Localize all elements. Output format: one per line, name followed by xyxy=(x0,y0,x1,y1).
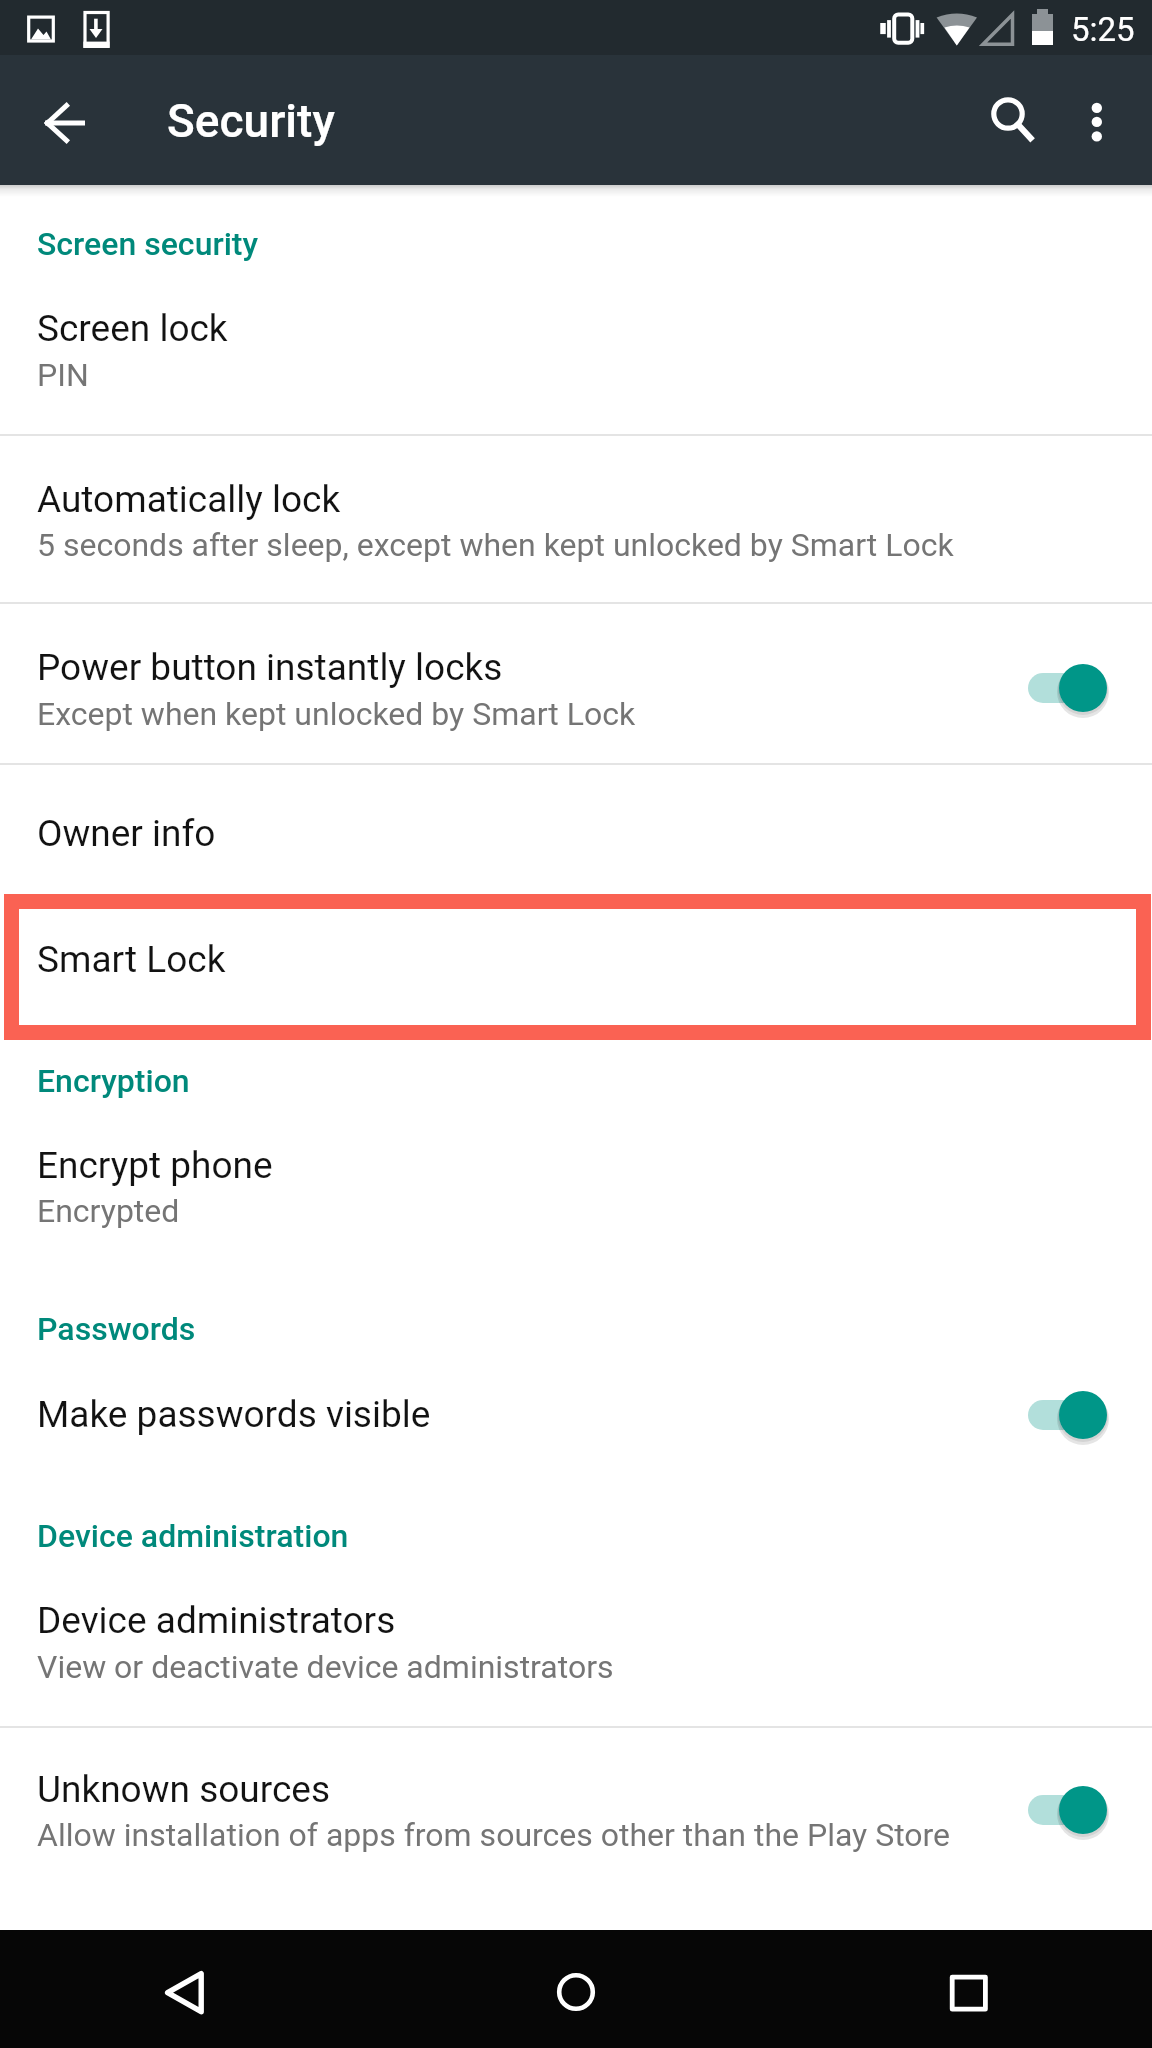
staticText: View or deactivate device administrators xyxy=(37,1648,614,1686)
staticText: PIN xyxy=(37,356,89,394)
button[interactable]: Make passwords visible xyxy=(0,1290,1152,1470)
staticText: Encrypted xyxy=(37,1192,180,1230)
staticText: Screen lock xyxy=(37,307,228,350)
button[interactable]: Search xyxy=(962,68,1054,160)
button[interactable]: Device administrators xyxy=(0,1490,1152,1726)
staticText: Encryption xyxy=(37,1062,190,1100)
button[interactable]: On xyxy=(1012,1375,1136,1455)
button[interactable]: Navigate up xyxy=(19,69,109,159)
button[interactable]: Back xyxy=(129,1930,239,2040)
button[interactable]: More options xyxy=(1051,68,1143,160)
button[interactable]: Smart Lock xyxy=(19,909,1136,1025)
button[interactable]: Encrypt phone xyxy=(0,1040,1152,1250)
staticText: Power button instantly locks xyxy=(37,646,503,689)
button[interactable]: Home xyxy=(521,1930,631,2040)
button[interactable]: Owner info xyxy=(0,765,1152,893)
staticText: Device administrators xyxy=(37,1599,396,1642)
staticText: Owner info xyxy=(37,812,216,855)
staticText: 5 seconds after sleep, except when kept … xyxy=(37,526,954,564)
button[interactable]: Automatically lock xyxy=(0,436,1152,602)
staticText: Unknown sources xyxy=(37,1768,331,1811)
staticText: Smart Lock xyxy=(37,938,226,981)
button[interactable]: Screen lock xyxy=(0,185,1152,434)
button[interactable]: On xyxy=(1012,648,1136,728)
button[interactable]: Unknown sources xyxy=(0,1728,1152,1930)
button[interactable]: Recent apps xyxy=(913,1930,1023,2040)
staticText: Allow installation of apps from sources … xyxy=(37,1816,951,1854)
button[interactable]: Power button instantly locks xyxy=(0,604,1152,763)
staticText: Automatically lock xyxy=(37,478,341,521)
staticText: Passwords xyxy=(37,1310,196,1348)
button[interactable]: On xyxy=(1012,1770,1136,1850)
staticText: Security xyxy=(167,94,335,148)
staticText: Encrypt phone xyxy=(37,1144,273,1187)
staticText: Except when kept unlocked by Smart Lock xyxy=(37,695,636,733)
staticText: 5:25 xyxy=(1071,10,1135,49)
staticText: Screen security xyxy=(37,225,259,263)
staticText: Device administration xyxy=(37,1517,349,1555)
staticText: Make passwords visible xyxy=(37,1393,431,1436)
